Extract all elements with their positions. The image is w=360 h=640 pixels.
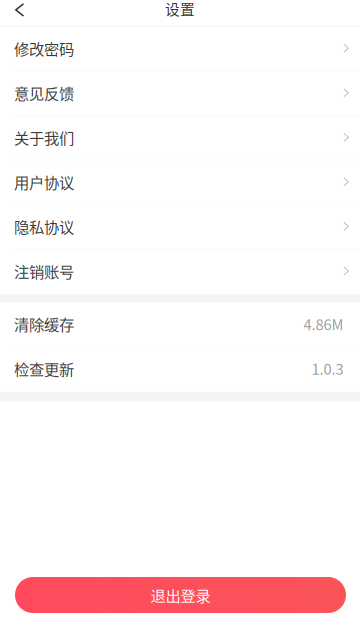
- button[interactable]: 退出登录: [15, 577, 346, 613]
- button[interactable]: 用户协议: [0, 161, 360, 205]
- staticText: 修改密码: [14, 37, 74, 59]
- staticText: 用户协议: [14, 171, 74, 193]
- staticText: 4.86M: [303, 313, 343, 334]
- staticText: 退出登录: [150, 584, 210, 606]
- button[interactable]: 检查更新: [0, 347, 360, 392]
- staticText: 检查更新: [14, 357, 74, 379]
- button[interactable]: Back: [0, 0, 59, 26]
- staticText: 清除缓存: [14, 313, 74, 335]
- button[interactable]: 注销账号: [0, 250, 360, 294]
- staticText: 意见反馈: [14, 82, 74, 104]
- staticText: 隐私协议: [14, 215, 74, 237]
- button[interactable]: 隐私协议: [0, 205, 360, 250]
- staticText: 注销账号: [14, 260, 74, 282]
- button[interactable]: 意见反馈: [0, 71, 360, 116]
- staticText: 设置: [165, 0, 195, 19]
- button[interactable]: 修改密码: [0, 27, 360, 71]
- button[interactable]: 关于我们: [0, 116, 360, 161]
- staticText: 1.0.3: [311, 358, 343, 379]
- button[interactable]: 清除缓存: [0, 303, 360, 347]
- staticText: 关于我们: [14, 126, 74, 148]
